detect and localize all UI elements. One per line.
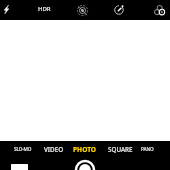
button[interactable]: Take photo (73, 158, 97, 170)
button[interactable]: Flash (0, 0, 15, 18)
staticText: PHOTO (73, 145, 97, 154)
staticText: SQUARE (108, 145, 133, 154)
button[interactable]: VIDEO (33, 143, 75, 155)
button[interactable]: Timer (110, 1, 128, 19)
button[interactable]: PANO (126, 143, 168, 155)
button[interactable]: Filters (150, 1, 168, 19)
staticText: HDR (38, 5, 51, 13)
button[interactable]: Photo library (11, 164, 28, 170)
button[interactable]: SQUARE (99, 143, 141, 155)
button[interactable]: SLO-MO (2, 143, 44, 155)
button[interactable]: PHOTO (64, 143, 106, 155)
staticText: PANO (141, 146, 154, 152)
button[interactable]: HDR (32, 0, 56, 18)
staticText: VIDEO (44, 145, 64, 154)
button[interactable]: Live Photo (73, 1, 91, 19)
staticText: SLO-MO (14, 146, 32, 152)
